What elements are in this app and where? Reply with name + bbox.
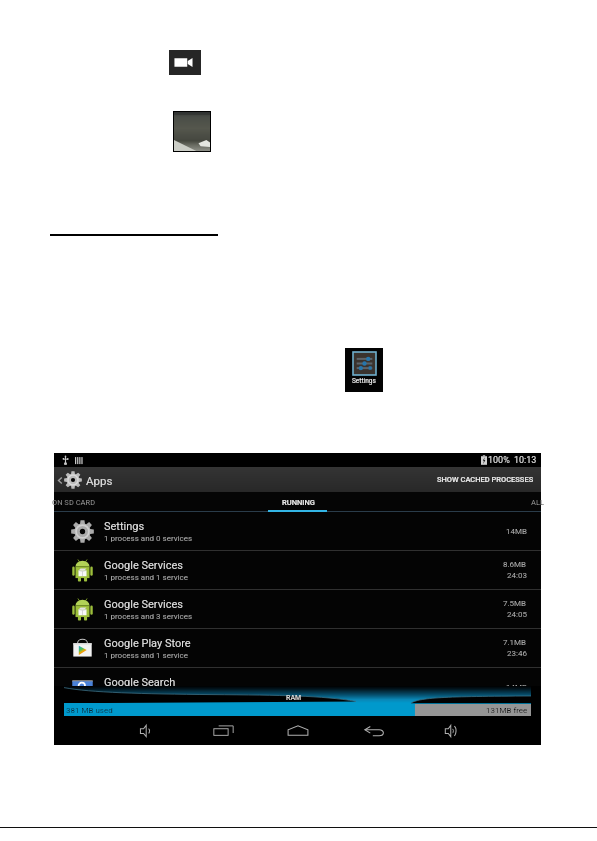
button[interactable]: RUNNING (217, 492, 379, 512)
staticText: 23:46 (507, 649, 527, 658)
staticText: Google Play Store (104, 637, 191, 650)
staticText: 1 process and 1 service (104, 573, 188, 582)
staticText: Google Services (104, 559, 183, 572)
other: Up (57, 475, 63, 486)
button[interactable]: ALL (379, 492, 541, 512)
staticText: 8.6MB (503, 560, 527, 569)
staticText: 24:05 (507, 610, 527, 619)
staticText: Google Services (104, 598, 183, 611)
staticText: 1 process and 3 services (104, 612, 193, 621)
staticText: RAM (286, 694, 302, 702)
staticText: 14MB (506, 527, 527, 536)
staticText: 7.5MB (503, 599, 527, 608)
staticText: 100% (488, 455, 510, 466)
staticText: Settings (104, 520, 145, 533)
button[interactable]: Google Services (54, 590, 541, 629)
button[interactable]: Recent apps (211, 716, 235, 745)
staticText: 1 process and 1 service (104, 651, 188, 660)
button[interactable]: Up (54, 471, 119, 489)
staticText: 24:03 (507, 571, 527, 580)
button[interactable]: Volume down (133, 716, 157, 745)
button[interactable]: Home (286, 716, 310, 745)
staticText: 10:13 (514, 455, 537, 466)
button[interactable]: ON SD CARD (54, 492, 217, 512)
button[interactable]: Google Services (54, 551, 541, 590)
staticText: 1 process and 0 services (104, 534, 193, 543)
button[interactable]: Settings (54, 512, 541, 551)
button[interactable]: Google Play Store (54, 629, 541, 668)
staticText: Apps (86, 474, 113, 487)
button[interactable]: Volume up (438, 716, 462, 745)
button[interactable]: Google Search (54, 668, 541, 707)
button[interactable]: SHOW CACHED PROCESSES (430, 470, 541, 489)
staticText: 131MB free (486, 706, 528, 715)
staticText: ON SD CARD (52, 498, 96, 507)
button[interactable]: Back (362, 716, 386, 745)
staticText: SHOW CACHED PROCESSES (437, 475, 534, 484)
staticText: ALL (531, 498, 545, 507)
staticText: 381 MB used (66, 706, 113, 715)
staticText: RUNNING (282, 498, 315, 507)
staticText: 7.1MB (503, 638, 527, 647)
staticText: 14MB (506, 683, 527, 692)
staticText: Settings (352, 377, 376, 385)
staticText: Google Search (104, 676, 176, 689)
staticText: 1 process and 1 service (104, 690, 188, 699)
